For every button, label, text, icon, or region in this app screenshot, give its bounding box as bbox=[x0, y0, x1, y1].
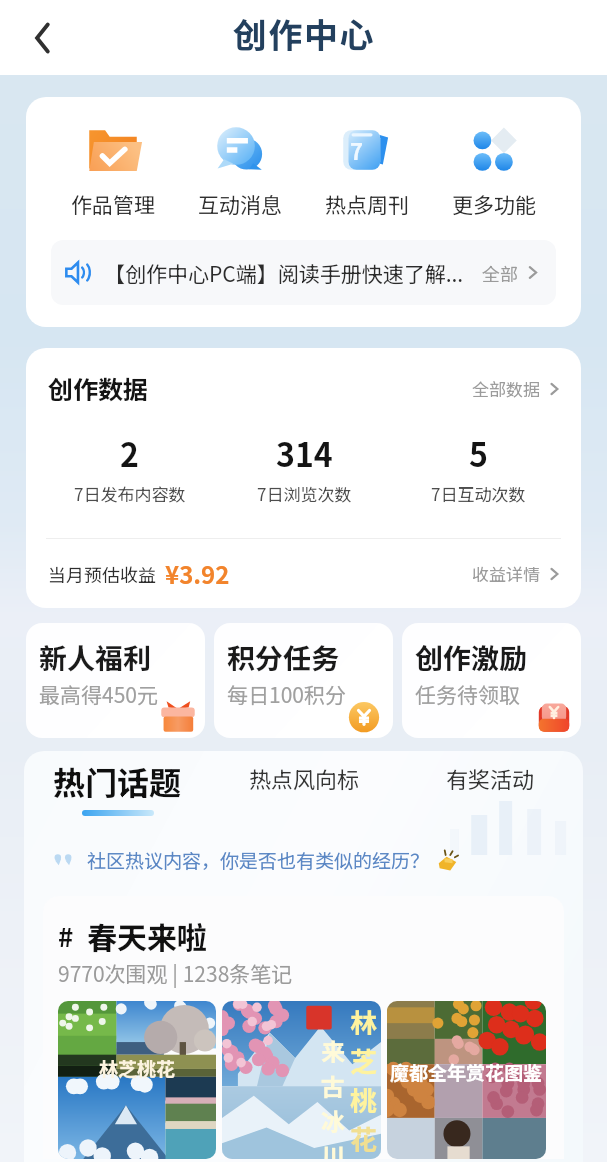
staticText: 节 bbox=[350, 1158, 377, 1159]
staticText: 更多功能 bbox=[452, 189, 536, 219]
staticText: 创作激励 bbox=[415, 637, 528, 678]
staticText: 魔都全年赏花图鉴 bbox=[390, 1058, 543, 1086]
staticText: 314 bbox=[276, 430, 333, 476]
staticText: 收益详情 bbox=[472, 561, 540, 586]
staticText: 每日100积分 bbox=[227, 679, 346, 709]
staticText: 5 bbox=[469, 430, 488, 476]
button[interactable]: 新人福利 bbox=[26, 623, 205, 738]
staticText: 川 bbox=[321, 1138, 345, 1159]
button[interactable]: 有奖活动 bbox=[397, 758, 583, 794]
button[interactable]: 作品管理 bbox=[50, 117, 176, 219]
staticText: 7日发布内容数 bbox=[74, 481, 186, 506]
staticText: 林芝桃花 bbox=[99, 1054, 176, 1082]
staticText: 全部数据 bbox=[472, 376, 540, 401]
staticText: 2 bbox=[120, 430, 139, 476]
button[interactable]: Back bbox=[17, 12, 69, 64]
staticText: 积分任务 bbox=[227, 637, 340, 678]
staticText: 任务待领取 bbox=[415, 679, 520, 709]
button[interactable]: 【创作中心PC端】阅读手册快速了解... bbox=[51, 240, 556, 305]
staticText: 作品管理 bbox=[71, 189, 155, 219]
staticText: 9770次围观 | 1238条笔记 bbox=[58, 958, 293, 988]
button[interactable]: 创作激励 bbox=[402, 623, 581, 738]
staticText: 热门话题 bbox=[53, 758, 182, 804]
staticText: 互动消息 bbox=[198, 189, 282, 219]
staticText: 7日浏览次数 bbox=[257, 481, 352, 506]
button[interactable]: 更多功能 bbox=[430, 117, 557, 219]
staticText: 桃 bbox=[350, 1080, 377, 1119]
staticText: 春天来啦 bbox=[87, 914, 207, 957]
staticText: 社区热议内容，你是否也有类似的经历？ bbox=[87, 846, 430, 874]
button[interactable]: 5 bbox=[391, 430, 565, 506]
staticText: 花 bbox=[350, 1119, 377, 1158]
button[interactable]: 热点风向标 bbox=[211, 758, 397, 794]
staticText: 当月预估收益 bbox=[48, 561, 156, 587]
staticText: 有奖活动 bbox=[446, 762, 535, 794]
staticText: 古 bbox=[321, 1068, 345, 1103]
staticText: ¥3.92 bbox=[165, 556, 230, 591]
staticText: 最高得450元 bbox=[39, 679, 158, 709]
staticText: 热点风向标 bbox=[249, 762, 360, 794]
staticText: 创作数据 bbox=[48, 370, 149, 406]
staticText: 冰 bbox=[321, 1103, 345, 1138]
button[interactable]: 当月预估收益 bbox=[26, 539, 581, 608]
button[interactable]: 热门话题 bbox=[24, 758, 211, 816]
button[interactable]: 积分任务 bbox=[214, 623, 393, 738]
button[interactable]: 314 bbox=[217, 430, 391, 506]
button[interactable]: 7 bbox=[303, 117, 430, 219]
staticText: 【创作中心PC端】阅读手册快速了解... bbox=[104, 258, 474, 288]
button[interactable]: 全部数据 bbox=[472, 376, 561, 401]
button[interactable]: # bbox=[43, 896, 564, 1159]
button[interactable]: 2 bbox=[42, 430, 217, 506]
staticText: 林 bbox=[350, 1002, 377, 1041]
staticText: 创作中心 bbox=[233, 9, 375, 58]
staticText: # bbox=[58, 917, 74, 955]
staticText: 7日互动次数 bbox=[431, 481, 526, 506]
button[interactable]: 互动消息 bbox=[176, 117, 303, 219]
staticText: 新人福利 bbox=[39, 637, 152, 678]
staticText: 7 bbox=[350, 134, 363, 166]
staticText: 芝 bbox=[350, 1041, 377, 1080]
staticText: 全部 bbox=[482, 260, 518, 286]
staticText: 热点周刊 bbox=[325, 189, 409, 219]
staticText: 来 bbox=[321, 1033, 345, 1068]
